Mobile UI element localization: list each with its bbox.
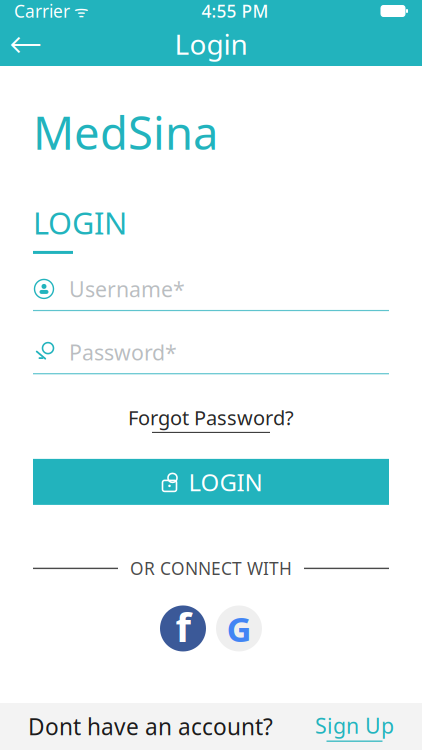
button[interactable]: Sign in with Facebook — [160, 602, 206, 655]
staticText: MedSina — [33, 102, 218, 162]
button[interactable]: Sign in with Google — [216, 605, 262, 651]
staticText: Carrier — [14, 0, 70, 22]
staticText: LOGIN — [188, 466, 262, 498]
staticText: f — [175, 600, 190, 653]
staticText: LOGIN — [33, 202, 127, 243]
staticText: Sign Up — [315, 711, 394, 739]
staticText: ᯤ — [70, 0, 89, 22]
button[interactable]: Back — [0, 22, 52, 66]
staticText: G — [226, 605, 251, 651]
button[interactable]: LOGIN — [33, 459, 389, 505]
staticText: Username* — [69, 275, 185, 303]
staticText: Login — [174, 25, 247, 63]
staticText: Dont have an account? — [28, 711, 273, 741]
staticText: 4:55 PM — [201, 0, 268, 22]
button[interactable]: Forgot Password? — [128, 404, 294, 433]
staticText: OR CONNECT WITH — [130, 557, 292, 580]
staticText: ← — [9, 21, 43, 67]
button[interactable]: Sign Up — [315, 711, 394, 742]
staticText: Password* — [69, 338, 177, 366]
staticText: Forgot Password? — [128, 404, 294, 431]
